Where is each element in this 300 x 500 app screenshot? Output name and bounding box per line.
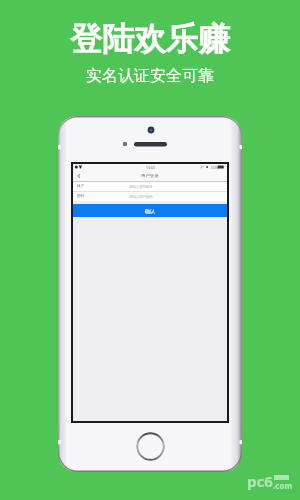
staticText: 用户登录 [141, 173, 159, 179]
staticText: 实名认证安全可靠 [86, 66, 214, 86]
staticText: .com [273, 480, 293, 491]
staticText: 账户 [77, 184, 85, 189]
staticText: 100% [211, 166, 219, 170]
button[interactable]: 密码 [73, 192, 227, 201]
staticText: 请输入用户密码 [129, 195, 153, 199]
staticText: 13:33 [146, 165, 155, 170]
button[interactable]: Back [73, 171, 85, 181]
staticText: 请输入登录帐号 [129, 185, 153, 189]
staticText: 确认 [145, 208, 155, 214]
button[interactable]: Home [136, 432, 165, 461]
staticText: 密码 [77, 194, 85, 199]
staticText: pc6 [247, 471, 273, 491]
button[interactable]: 确认 [73, 204, 227, 217]
staticText: 登陆欢乐赚 [70, 19, 230, 59]
button[interactable]: 账户 [73, 182, 227, 191]
